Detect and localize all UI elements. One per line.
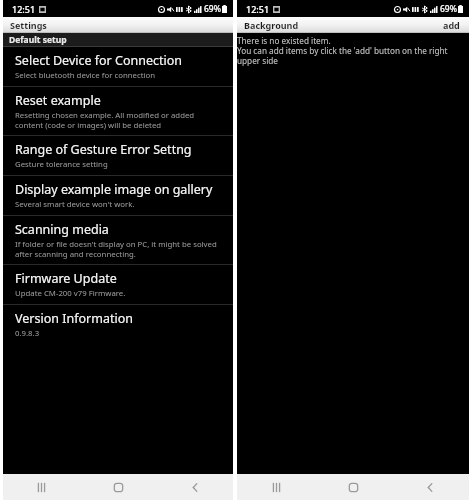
button[interactable]: Recent apps [259, 474, 293, 500]
staticText: Reset example [15, 92, 101, 109]
button[interactable]: Scanning media [3, 216, 233, 264]
staticText: Select Device for Connection [15, 52, 183, 69]
staticText: Select bluetooth device for connection [15, 70, 156, 81]
staticText: Display example image on gallery [15, 181, 213, 198]
button[interactable]: Display example image on gallery [3, 176, 233, 215]
staticText: Firmware Update [15, 270, 117, 287]
staticText: Resetting chosen example. All modified o… [15, 110, 195, 130]
button[interactable]: Version Information [3, 305, 233, 344]
staticText: 69% [440, 3, 457, 15]
staticText: Default setup [9, 34, 67, 46]
button[interactable]: Home [336, 474, 370, 500]
button[interactable]: Select Device for Connection [3, 47, 233, 86]
staticText: Version Information [15, 310, 133, 327]
staticText: 12:51 [12, 3, 36, 15]
staticText: Scanning media [15, 221, 109, 238]
button[interactable]: Home [101, 474, 135, 500]
button[interactable]: Recent apps [24, 474, 58, 500]
staticText: 12:51 [246, 3, 270, 15]
staticText: Range of Gesture Error Settng [15, 141, 192, 158]
button[interactable]: add [441, 18, 462, 32]
staticText: Several smart device won't work. [15, 199, 135, 210]
staticText: Gesture tolerance setting [15, 159, 108, 170]
button[interactable]: Range of Gesture Error Settng [3, 136, 233, 175]
staticText: Background [244, 19, 299, 31]
staticText: If folder or file doesn't display on PC,… [15, 239, 217, 259]
button[interactable]: Firmware Update [3, 265, 233, 304]
staticText: 69% [204, 3, 221, 15]
button[interactable]: Reset example [3, 87, 233, 135]
button[interactable]: Back [178, 474, 212, 500]
button[interactable]: Back [413, 474, 447, 500]
staticText: Settings [10, 19, 47, 31]
staticText: Update CM-200 v79 Firmware. [15, 288, 126, 299]
staticText: There is no existed item. You can add it… [237, 35, 467, 67]
staticText: add [443, 19, 460, 31]
staticText: 0.9.8.3 [15, 328, 40, 339]
